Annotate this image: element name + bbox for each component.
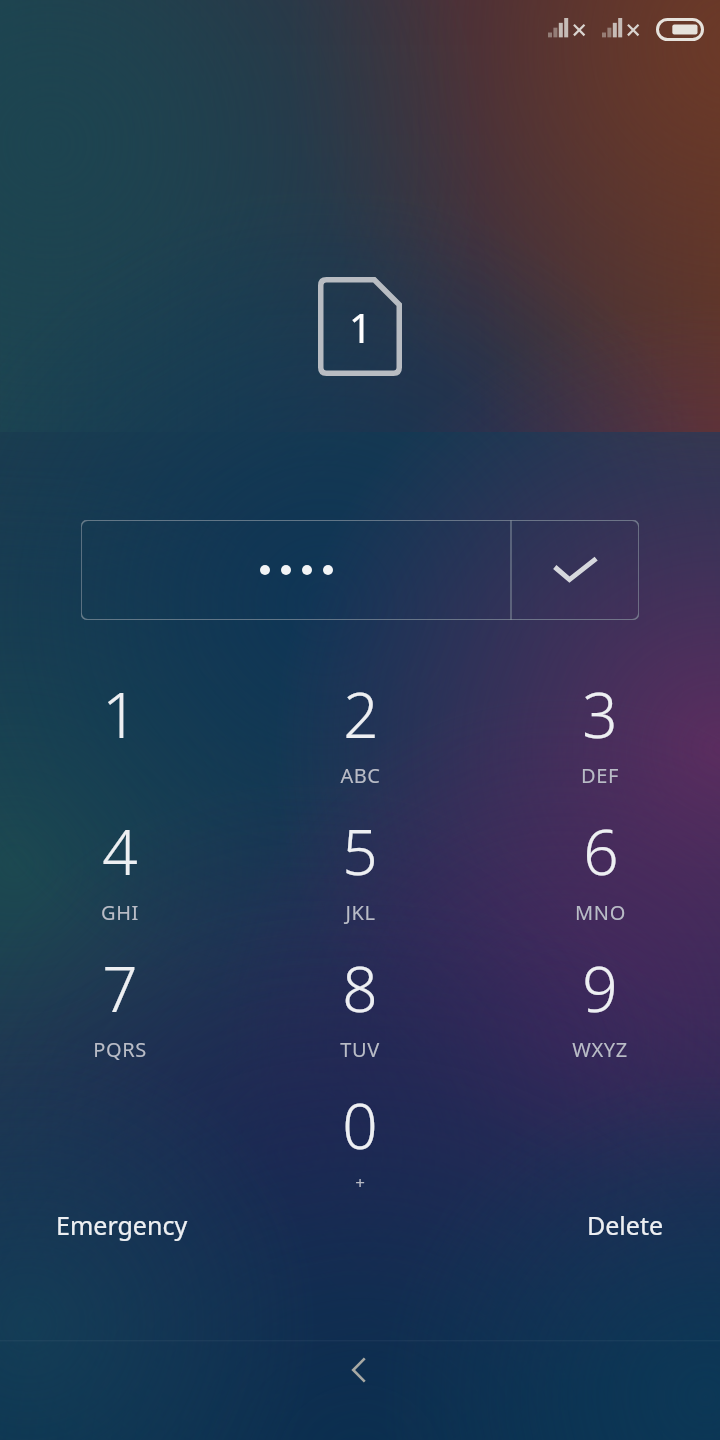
staticText: 9 xyxy=(582,946,618,1030)
button[interactable]: PIN entry xyxy=(81,520,511,620)
staticText: MNO xyxy=(575,899,626,926)
staticText: 1 xyxy=(349,300,372,354)
staticText: ABC xyxy=(340,762,381,789)
staticText: Delete xyxy=(587,1208,664,1242)
staticText: 5 xyxy=(342,809,378,893)
button[interactable]: Delete xyxy=(561,1196,690,1254)
button[interactable]: 9 xyxy=(480,934,720,1071)
staticText: Emergency xyxy=(56,1208,188,1242)
staticText: TUV xyxy=(340,1036,380,1063)
staticText: 3 xyxy=(582,672,618,756)
button[interactable]: Back xyxy=(312,1322,408,1418)
staticText: 1 xyxy=(102,672,138,756)
staticText: + xyxy=(355,1171,366,1194)
staticText: 8 xyxy=(342,946,378,1030)
staticText: 4 xyxy=(102,809,138,893)
staticText: 7 xyxy=(102,946,138,1030)
button[interactable]: 5 xyxy=(240,797,480,934)
staticText: 2 xyxy=(343,672,379,756)
button[interactable]: 0 xyxy=(240,1071,480,1208)
button[interactable]: 6 xyxy=(480,797,720,934)
button[interactable]: 3 xyxy=(480,660,720,797)
staticText: DEF xyxy=(581,762,619,789)
staticText: 6 xyxy=(583,809,619,893)
button[interactable]: 8 xyxy=(240,934,480,1071)
button[interactable]: Emergency xyxy=(30,1196,214,1254)
button[interactable]: 4 xyxy=(0,797,240,934)
button[interactable]: 2 xyxy=(240,660,480,797)
staticText: JKL xyxy=(345,899,376,926)
staticText: PQRS xyxy=(93,1036,147,1063)
staticText: GHI xyxy=(101,899,139,926)
button[interactable]: 1 xyxy=(0,660,240,797)
button[interactable]: Confirm PIN xyxy=(511,520,639,620)
staticText: WXYZ xyxy=(572,1036,628,1063)
staticText: 0 xyxy=(342,1083,378,1167)
button[interactable]: 7 xyxy=(0,934,240,1071)
